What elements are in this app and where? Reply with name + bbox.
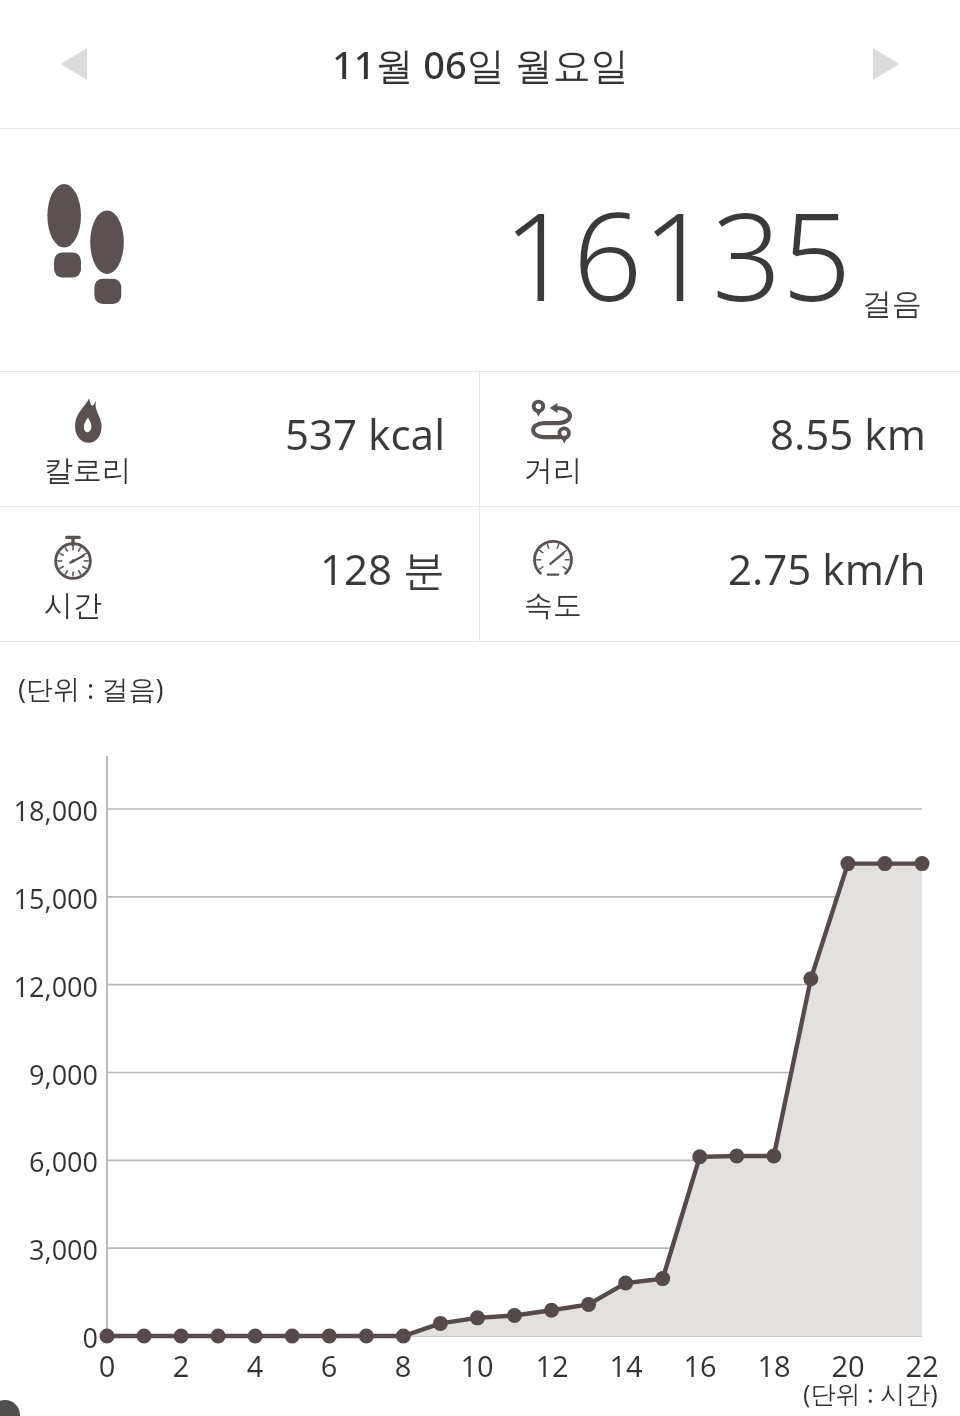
button[interactable]: Previous day: [46, 36, 102, 92]
staticText: 0: [77, 1346, 137, 1385]
staticText: 6,000: [2, 1143, 98, 1180]
staticText: 18,000: [2, 792, 98, 829]
staticText: 9,000: [2, 1056, 98, 1093]
staticText: 16: [670, 1346, 730, 1385]
staticText: 12,000: [2, 968, 98, 1005]
staticText: 128 분: [320, 540, 445, 597]
staticText: 칼로리: [44, 452, 131, 489]
staticText: 20: [818, 1346, 878, 1385]
staticText: 22: [892, 1346, 952, 1385]
staticText: 537 kcal: [285, 405, 445, 462]
staticText: 15,000: [2, 880, 98, 917]
button[interactable]: 거리: [480, 372, 960, 506]
staticText: 12: [522, 1346, 582, 1385]
button[interactable]: Next day: [858, 36, 914, 92]
staticText: 거리: [524, 452, 582, 489]
button[interactable]: 16135: [0, 129, 960, 371]
staticText: 11월 06일 월요일: [332, 38, 629, 90]
staticText: 3,000: [2, 1231, 98, 1268]
staticText: 속도: [524, 587, 582, 624]
staticText: 18: [744, 1346, 804, 1385]
staticText: 8: [373, 1346, 433, 1385]
button[interactable]: 속도: [480, 507, 960, 641]
staticText: 10: [447, 1346, 507, 1385]
staticText: 6: [299, 1346, 359, 1385]
button[interactable]: 시간: [0, 507, 479, 641]
staticText: 16135: [503, 171, 852, 337]
staticText: 0: [2, 1319, 98, 1356]
staticText: (단위 : 걸음): [18, 670, 164, 707]
staticText: 2: [151, 1346, 211, 1385]
staticText: 8.55 km: [770, 405, 926, 462]
staticText: 걸음: [862, 285, 922, 323]
staticText: 4: [225, 1346, 285, 1385]
button[interactable]: 칼로리: [0, 372, 479, 506]
staticText: 2.75 km/h: [728, 540, 926, 597]
staticText: 14: [596, 1346, 656, 1385]
staticText: (단위 : 시간): [803, 1376, 938, 1410]
staticText: 시간: [44, 587, 102, 624]
